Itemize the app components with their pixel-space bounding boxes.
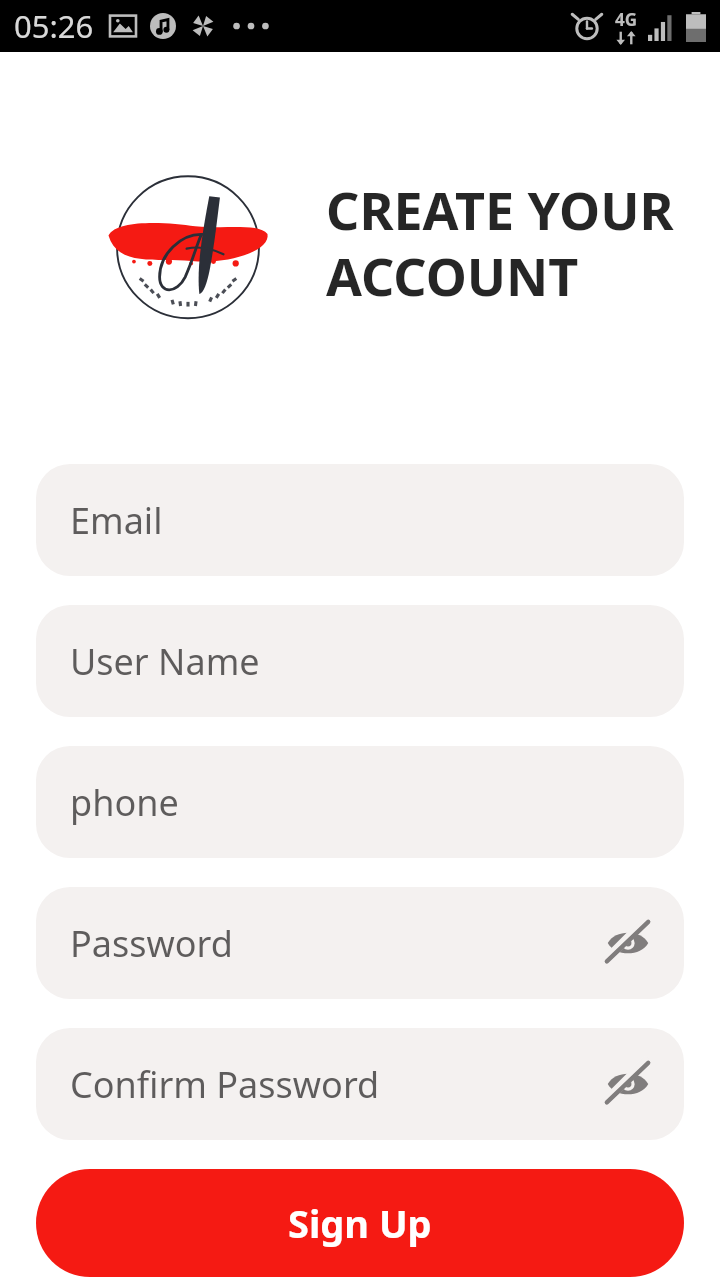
staticText: Email bbox=[70, 496, 163, 545]
button[interactable]: phone bbox=[36, 746, 684, 858]
staticText: CREATE YOUR ACCOUNT bbox=[326, 174, 674, 311]
staticText: phone bbox=[70, 778, 179, 827]
button[interactable]: Confirm Password bbox=[36, 1028, 684, 1140]
button[interactable]: Toggle password visibility bbox=[596, 911, 660, 975]
staticText: Sign Up bbox=[288, 1197, 432, 1249]
staticText: 4G bbox=[615, 8, 638, 31]
button[interactable]: Email bbox=[36, 464, 684, 576]
button[interactable]: Sign Up bbox=[36, 1169, 684, 1277]
button[interactable]: Password bbox=[36, 887, 684, 999]
staticText: Confirm Password bbox=[70, 1060, 380, 1109]
staticText: User Name bbox=[70, 637, 260, 686]
button[interactable]: User Name bbox=[36, 605, 684, 717]
staticText: 05:26 bbox=[14, 5, 94, 47]
staticText: Password bbox=[70, 919, 233, 968]
button[interactable]: Toggle password visibility bbox=[596, 1052, 660, 1116]
